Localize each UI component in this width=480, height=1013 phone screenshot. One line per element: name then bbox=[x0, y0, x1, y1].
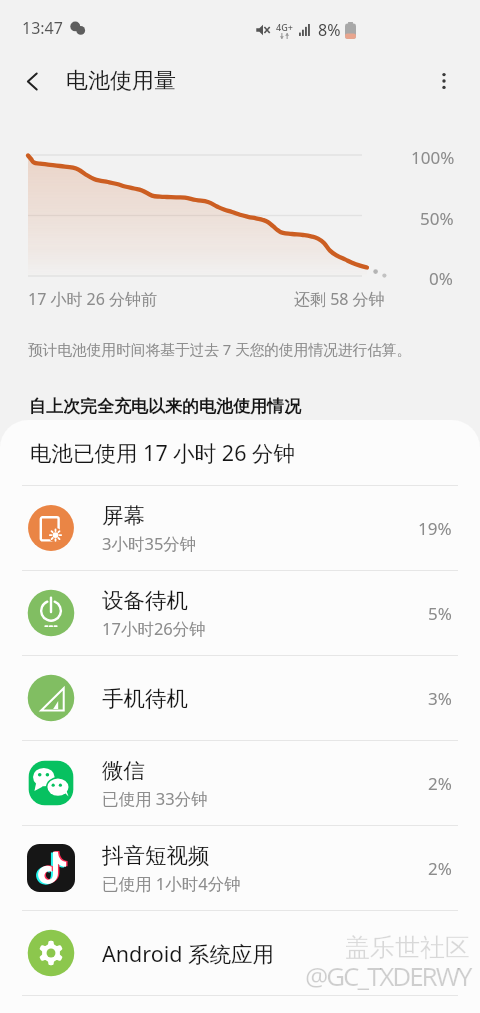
staticText: 8% bbox=[318, 19, 341, 41]
staticText: 2% bbox=[428, 857, 452, 880]
staticText: 17小时26分钟 bbox=[102, 617, 206, 640]
staticText: 电池使用量 bbox=[66, 67, 176, 95]
staticText: 电池已使用 17 小时 26 分钟 bbox=[30, 438, 296, 467]
button[interactable]: 手机待机 bbox=[0, 656, 480, 740]
staticText: 盖乐世社区 bbox=[345, 932, 470, 963]
staticText: 5% bbox=[428, 602, 452, 625]
button[interactable]: Back bbox=[10, 59, 54, 103]
button[interactable]: More options bbox=[422, 59, 466, 103]
staticText: 3% bbox=[428, 687, 452, 710]
button[interactable]: 屏幕 bbox=[0, 486, 480, 570]
staticText: Android 系统应用 bbox=[102, 939, 275, 968]
staticText: 已使用 1小时4分钟 bbox=[102, 872, 241, 895]
staticText: 50% bbox=[420, 207, 454, 230]
staticText: 17 小时 26 分钟前 bbox=[28, 288, 158, 310]
staticText: 还剩 58 分钟 bbox=[294, 288, 385, 310]
staticText: 手机待机 bbox=[102, 685, 188, 712]
button[interactable]: 设备待机 bbox=[0, 571, 480, 655]
staticText: 13:47 bbox=[22, 17, 63, 39]
staticText: 2% bbox=[428, 772, 452, 795]
staticText: 0% bbox=[429, 267, 453, 290]
button[interactable]: 抖音短视频 bbox=[0, 826, 480, 910]
staticText: 抖音短视频 bbox=[102, 842, 210, 869]
button[interactable]: Android 系统应用 bbox=[0, 911, 480, 995]
staticText: 自上次完全充电以来的电池使用情况 bbox=[29, 396, 301, 417]
staticText: 100% bbox=[411, 146, 455, 169]
staticText: 预计电池使用时间将基于过去 7 天您的使用情况进行估算。 bbox=[28, 339, 412, 359]
staticText: 19% bbox=[418, 517, 452, 540]
staticText: @GC_TXDERWY bbox=[305, 958, 471, 993]
staticText: 4G+ bbox=[276, 21, 293, 33]
staticText: 已使用 33分钟 bbox=[102, 787, 208, 810]
button[interactable]: 微信 bbox=[0, 741, 480, 825]
staticText: 屏幕 bbox=[102, 502, 145, 529]
staticText: 微信 bbox=[102, 757, 145, 784]
staticText: 设备待机 bbox=[102, 587, 188, 614]
staticText: 3小时35分钟 bbox=[102, 532, 197, 555]
